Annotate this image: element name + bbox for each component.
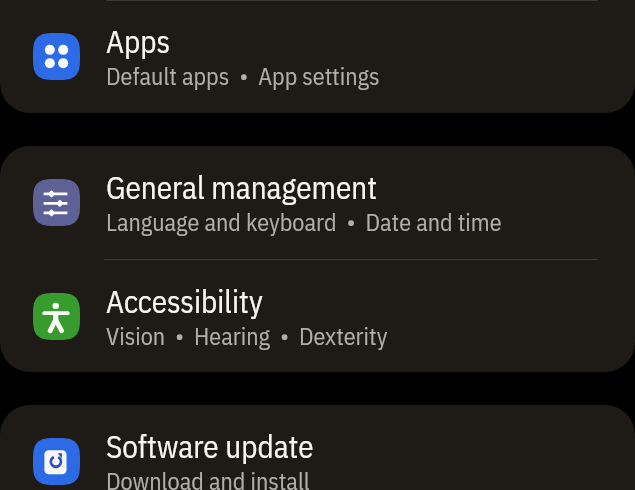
staticText: Download and install (106, 465, 310, 490)
staticText: Vision • Hearing • Dexterity (106, 320, 388, 351)
button[interactable]: Software update (0, 405, 635, 490)
other: Apps (33, 33, 80, 80)
staticText: Default apps • App settings (106, 60, 380, 91)
staticText: Software update (106, 426, 314, 466)
button[interactable]: Apps (0, 0, 635, 113)
staticText: Language and keyboard • Date and time (106, 206, 502, 237)
button[interactable]: General management (0, 146, 635, 259)
button[interactable]: Accessibility (0, 260, 635, 372)
staticText: General management (106, 167, 378, 207)
other: General management (33, 179, 80, 226)
staticText: Apps (106, 21, 171, 61)
other: Accessibility (33, 293, 80, 340)
staticText: Accessibility (106, 281, 264, 321)
other: Software update (33, 438, 80, 485)
